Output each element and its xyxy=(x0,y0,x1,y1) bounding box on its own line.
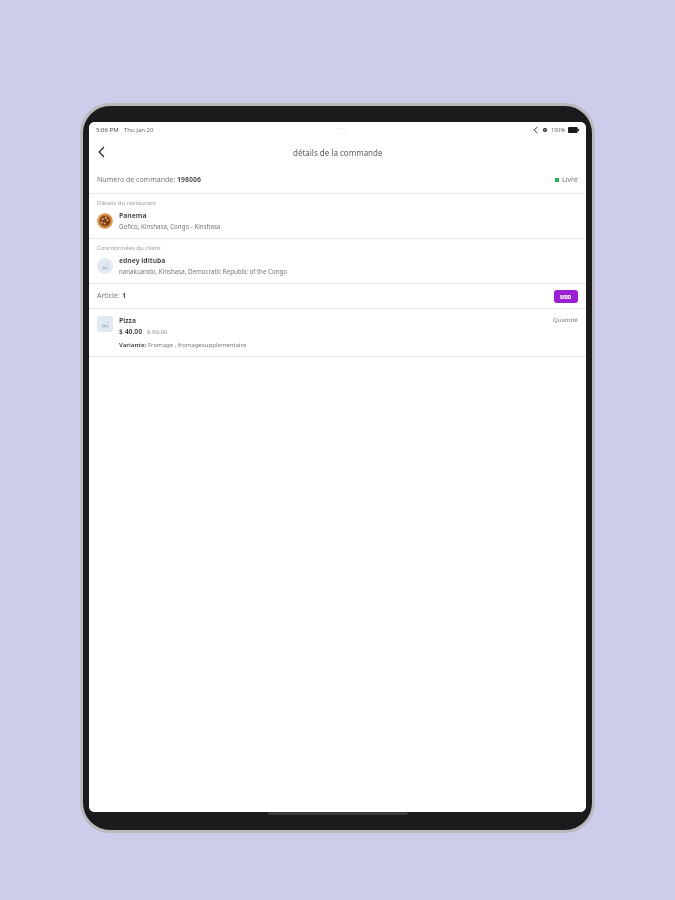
staticText: 100% xyxy=(551,126,566,133)
staticText: 1 xyxy=(122,291,127,301)
staticText: Numéro de commande: xyxy=(97,175,177,185)
staticText: Fromage , fromagesupplementaire xyxy=(148,341,247,349)
staticText: Panema xyxy=(119,211,147,220)
staticText: Détails du restaurant xyxy=(97,199,157,207)
staticText: USD xyxy=(560,293,572,300)
staticText: ᛫᛫᛫ xyxy=(338,127,348,132)
staticText: edney idituba xyxy=(119,256,166,265)
staticText: détails de la commande xyxy=(293,147,383,158)
staticText: Article: xyxy=(97,291,122,301)
button[interactable]: Détails du restaurant xyxy=(89,194,586,238)
staticText: Gofico, Kinshasa, Congo - Kinshasa xyxy=(119,222,221,230)
button[interactable]: Coordonnées du client xyxy=(89,239,586,283)
button[interactable]: Numéro de commande: xyxy=(89,167,586,193)
staticText: Pizza xyxy=(119,316,137,325)
staticText: Coordonnées du client xyxy=(97,244,161,252)
staticText: $ 50.00 xyxy=(147,328,168,336)
staticText: Thu Jan 20 xyxy=(124,126,154,134)
staticText: Variante: xyxy=(119,341,148,349)
staticText: Quantité xyxy=(553,316,578,324)
staticText: Livré xyxy=(562,175,578,185)
button[interactable]: Article: xyxy=(89,284,586,308)
staticText: $ 40.00 xyxy=(119,327,143,336)
staticText: 198006 xyxy=(177,175,202,185)
button[interactable]: USD xyxy=(554,290,578,303)
button[interactable]: Back xyxy=(91,141,113,163)
button[interactable]: Pizza xyxy=(89,309,586,356)
staticText: nanakuando, Kinshasa, Democratic Republi… xyxy=(119,267,288,275)
staticText: 5:06 PM xyxy=(96,126,119,134)
